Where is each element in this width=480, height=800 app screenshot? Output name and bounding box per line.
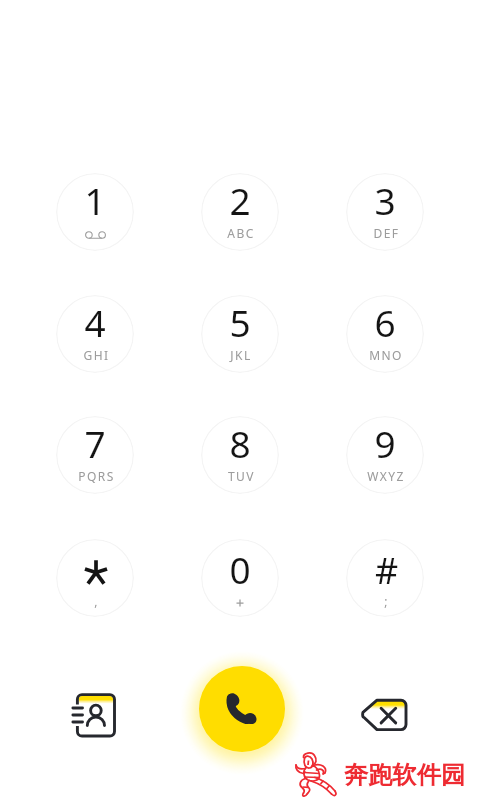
button[interactable]: star: [56, 539, 134, 617]
staticText: #: [375, 546, 399, 595]
button[interactable]: pound: [346, 539, 424, 617]
button[interactable]: 5: [201, 295, 279, 373]
staticText: 7: [84, 418, 106, 468]
button[interactable]: 8: [201, 416, 279, 494]
staticText: 6: [374, 297, 396, 347]
staticText: 0: [229, 544, 251, 594]
button[interactable]: 0 plus: [201, 539, 279, 617]
staticText: DEF: [373, 225, 400, 241]
staticText: 1: [84, 175, 106, 225]
button[interactable]: 7: [56, 416, 134, 494]
button[interactable]: 9: [346, 416, 424, 494]
staticText: 奔跑软件园: [344, 760, 465, 790]
button[interactable]: Call: [199, 666, 285, 752]
button[interactable]: 2: [201, 173, 279, 251]
staticText: 5: [229, 297, 251, 347]
staticText: ,: [94, 593, 99, 609]
staticText: 8: [229, 418, 251, 468]
button[interactable]: 6: [346, 295, 424, 373]
button[interactable]: 4: [56, 295, 134, 373]
staticText: PQRS: [78, 468, 115, 484]
button[interactable]: 3: [346, 173, 424, 251]
staticText: WXYZ: [367, 468, 405, 484]
button[interactable]: Contacts: [60, 679, 132, 751]
staticText: MNO: [369, 347, 403, 363]
button[interactable]: 1 voicemail: [56, 173, 134, 251]
staticText: ABC: [227, 225, 255, 241]
staticText: 2: [229, 175, 251, 225]
staticText: 3: [374, 175, 396, 225]
staticText: 9: [374, 418, 396, 468]
staticText: TUV: [228, 468, 255, 484]
button[interactable]: Backspace: [348, 679, 420, 751]
staticText: 4: [84, 297, 106, 347]
staticText: GHI: [83, 347, 110, 363]
staticText: JKL: [230, 347, 252, 363]
staticText: ;: [384, 593, 389, 609]
